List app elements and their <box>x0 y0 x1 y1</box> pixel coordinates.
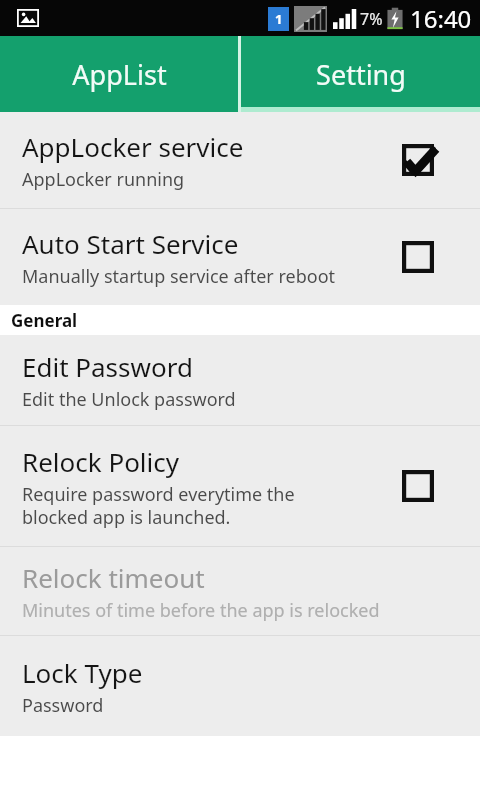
staticText: 7% <box>360 8 383 30</box>
staticText: Password <box>22 693 104 718</box>
staticText: Auto Start Service <box>22 226 239 261</box>
staticText: 1 <box>275 10 283 28</box>
staticText: Edit the Unlock password <box>22 387 236 412</box>
button[interactable]: AppLocker service toggle <box>392 134 444 186</box>
button[interactable]: AppLocker service <box>0 112 480 208</box>
button[interactable]: Edit Password <box>0 335 480 425</box>
staticText: AppLocker service <box>22 129 244 164</box>
staticText: 16:40 <box>410 2 472 35</box>
staticText: Relock Policy <box>22 444 180 479</box>
button[interactable]: Relock Policy <box>0 426 480 546</box>
staticText: Lock Type <box>22 655 143 690</box>
staticText: AppList <box>72 56 167 93</box>
staticText: Minutes of time before the app is relock… <box>22 598 380 623</box>
button[interactable]: Relock Policy toggle <box>392 460 444 512</box>
staticText: General <box>11 309 78 332</box>
button[interactable]: Auto Start Service toggle <box>392 231 444 283</box>
staticText: AppLocker running <box>22 167 185 192</box>
button[interactable]: AppList <box>0 36 238 112</box>
staticText: Relock timeout <box>22 560 205 595</box>
staticText: Setting <box>316 56 406 93</box>
button[interactable]: Setting <box>241 36 480 112</box>
button[interactable]: Auto Start Service <box>0 209 480 305</box>
staticText: Manually startup service after reboot <box>22 264 336 289</box>
staticText: Edit Password <box>22 349 193 384</box>
staticText: Require password everytime the blocked a… <box>22 482 295 529</box>
button[interactable]: Relock timeout <box>0 547 480 635</box>
button[interactable]: Lock Type <box>0 636 480 736</box>
